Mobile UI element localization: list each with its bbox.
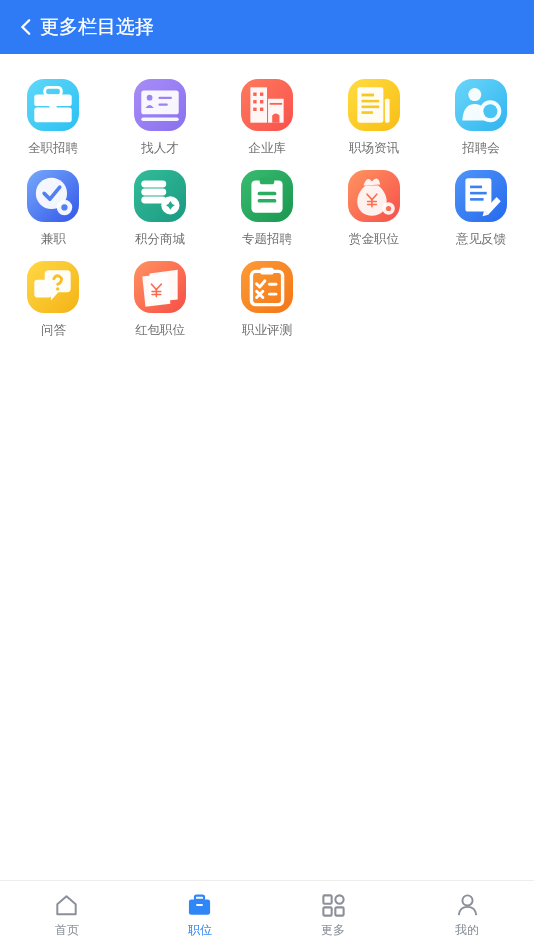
staticText: 兼职: [41, 231, 66, 247]
staticText: 赏金职位: [349, 231, 399, 247]
button[interactable]: 我的: [400, 881, 534, 949]
button[interactable]: 全职招聘: [0, 72, 106, 163]
staticText: 找人才: [141, 140, 179, 156]
button[interactable]: 企业库: [213, 72, 320, 163]
button[interactable]: 问答: [0, 254, 106, 345]
staticText: 全职招聘: [28, 140, 78, 156]
button[interactable]: 职业评测: [213, 254, 320, 345]
staticText: 首页: [55, 922, 79, 937]
staticText: 积分商城: [135, 231, 185, 247]
button[interactable]: Back: [4, 5, 48, 49]
button[interactable]: 赏金职位: [320, 163, 427, 254]
staticText: 招聘会: [462, 140, 500, 156]
staticText: 问答: [41, 322, 66, 338]
button[interactable]: 意见反馈: [427, 163, 534, 254]
staticText: 企业库: [248, 140, 286, 156]
button[interactable]: 职位: [133, 881, 266, 949]
button[interactable]: 首页: [0, 881, 133, 949]
button[interactable]: 积分商城: [106, 163, 213, 254]
button[interactable]: 找人才: [106, 72, 213, 163]
button[interactable]: 更多: [266, 881, 400, 949]
staticText: 意见反馈: [456, 231, 506, 247]
button[interactable]: 专题招聘: [213, 163, 320, 254]
staticText: 我的: [455, 922, 479, 937]
staticText: 职业评测: [242, 322, 292, 338]
button[interactable]: 红包职位: [106, 254, 213, 345]
staticText: 职场资讯: [349, 140, 399, 156]
button[interactable]: 兼职: [0, 163, 106, 254]
staticText: 职位: [188, 922, 212, 937]
staticText: 专题招聘: [242, 231, 292, 247]
button[interactable]: 招聘会: [427, 72, 534, 163]
button[interactable]: 职场资讯: [320, 72, 427, 163]
staticText: 更多: [321, 922, 345, 937]
staticText: 更多栏目选择: [40, 15, 154, 39]
staticText: 红包职位: [135, 322, 185, 338]
